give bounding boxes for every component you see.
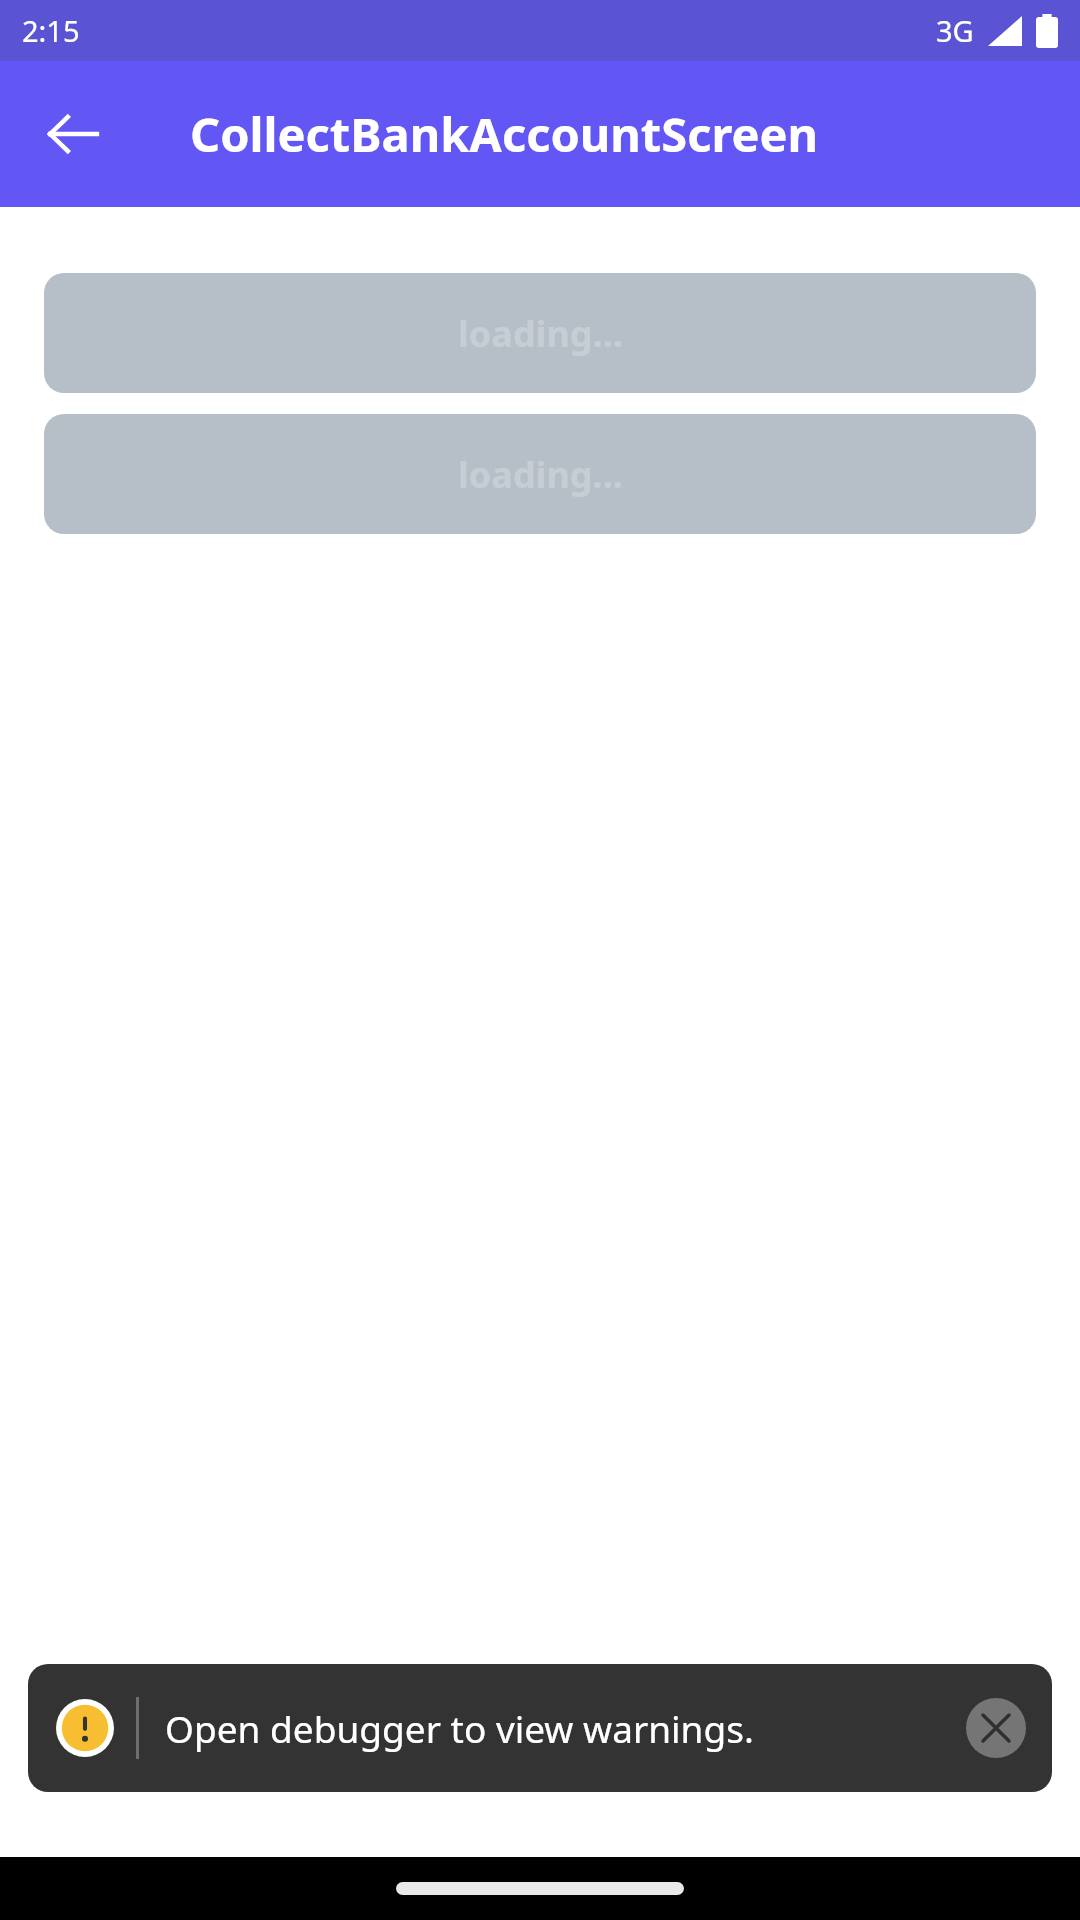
staticText: loading... xyxy=(458,309,623,358)
button[interactable]: Back xyxy=(25,86,121,182)
staticText: 3G xyxy=(936,11,974,50)
staticText: loading... xyxy=(458,450,623,499)
button[interactable]: Open debugger to view warnings. xyxy=(28,1664,1052,1792)
button[interactable]: Dismiss xyxy=(966,1698,1026,1758)
staticText: 2:15 xyxy=(22,11,80,50)
button[interactable]: loading... xyxy=(44,414,1036,534)
button[interactable]: loading... xyxy=(44,273,1036,393)
staticText: Open debugger to view warnings. xyxy=(165,1703,954,1753)
staticText: CollectBankAccountScreen xyxy=(190,102,819,166)
